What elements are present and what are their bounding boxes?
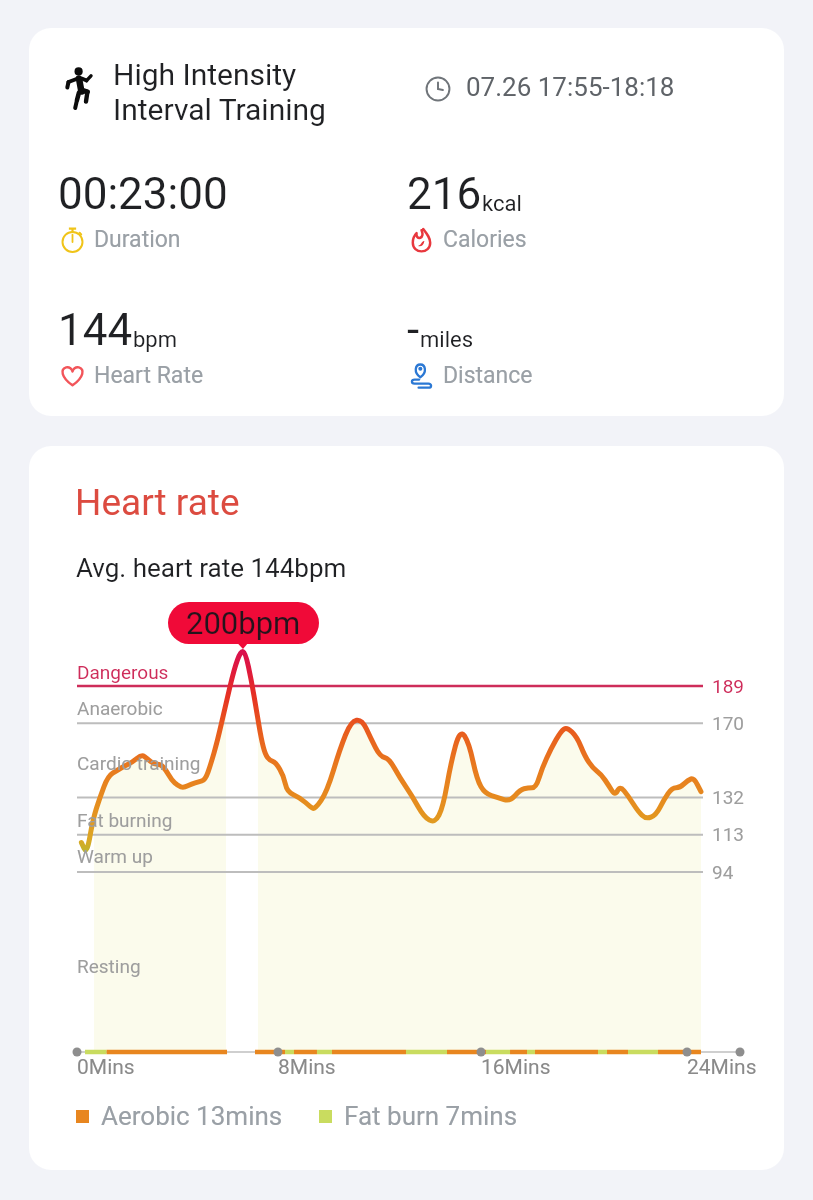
staticText: 216 — [407, 168, 482, 220]
staticText: kcal — [482, 191, 522, 217]
staticText: 07.26 17:55-18:18 — [466, 72, 675, 102]
staticText: Avg. heart rate 144bpm — [76, 553, 347, 583]
staticText: Fat burning — [77, 809, 173, 831]
staticText: 144 — [58, 304, 133, 356]
staticText: 00:23:00 — [58, 168, 228, 220]
staticText: Fat burn 7mins — [344, 1101, 518, 1131]
staticText: miles — [420, 327, 474, 353]
staticText: Distance — [443, 362, 533, 389]
staticText: 8Mins — [278, 1055, 336, 1080]
staticText: 113 — [712, 823, 745, 845]
staticText: Resting — [77, 955, 141, 977]
staticText: Heart Rate — [94, 362, 204, 389]
staticText: Anaerobic — [77, 697, 163, 719]
staticText: 24Mins — [687, 1055, 757, 1080]
button[interactable]: Heart rate — [29, 446, 784, 1170]
staticText: 189 — [712, 675, 745, 697]
staticText: 200bpm — [186, 605, 301, 641]
staticText: 16Mins — [481, 1055, 551, 1080]
staticText: Calories — [443, 226, 527, 253]
staticText: bpm — [133, 327, 177, 353]
staticText: 132 — [712, 786, 745, 808]
staticText: Warm up — [77, 845, 153, 867]
staticText: Aerobic 13mins — [101, 1101, 283, 1131]
staticText: Dangerous — [77, 661, 169, 683]
staticText: 0Mins — [77, 1055, 135, 1080]
staticText: 94 — [712, 861, 734, 883]
staticText: Interval Training — [113, 92, 326, 127]
button[interactable]: High Intensity — [29, 28, 784, 416]
staticText: 170 — [712, 712, 745, 734]
staticText: Duration — [94, 226, 181, 253]
staticText: - — [407, 304, 420, 356]
staticText: High Intensity — [113, 57, 297, 92]
staticText: Cardio training — [77, 752, 201, 774]
staticText: Heart rate — [75, 481, 240, 524]
